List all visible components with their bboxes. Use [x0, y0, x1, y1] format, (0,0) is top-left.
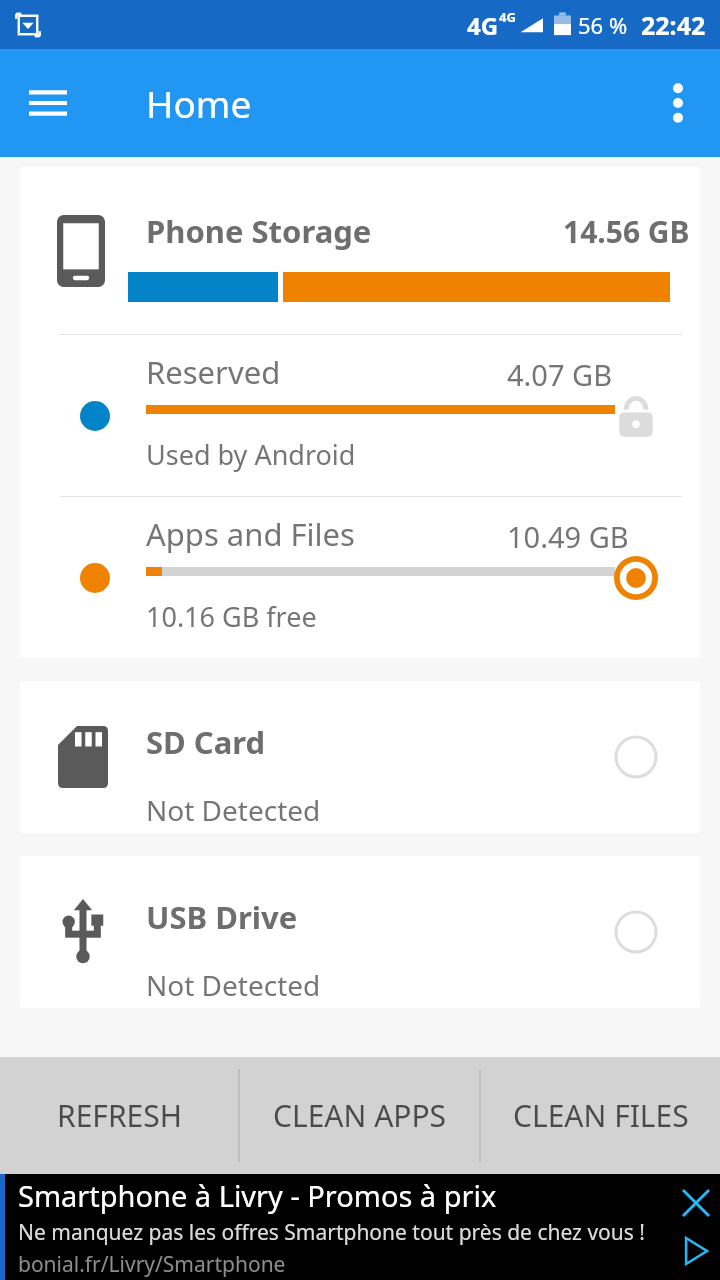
button[interactable]: Close ad [676, 1183, 716, 1223]
button[interactable]: Selected storage [610, 552, 662, 604]
staticText: Not Detected [146, 791, 321, 829]
button[interactable]: CLEAN APPS [240, 1057, 479, 1174]
button[interactable]: Select SD Card [610, 731, 662, 783]
staticText: 14.56 GB [563, 211, 690, 252]
staticText: Reserved [146, 351, 281, 393]
staticText: 56 % [578, 10, 628, 40]
button[interactable]: Select USB Drive [610, 906, 662, 958]
staticText: 10.16 GB free [146, 598, 317, 635]
staticText: Apps and Files [146, 513, 355, 555]
staticText: CLEAN FILES [513, 1095, 689, 1136]
staticText: Used by Android [146, 436, 356, 473]
button[interactable]: REFRESH [0, 1057, 238, 1174]
button[interactable]: CLEAN FILES [481, 1057, 720, 1174]
staticText: Phone Storage [146, 210, 372, 252]
staticText: Ne manquez pas les offres Smartphone tou… [18, 1218, 645, 1247]
staticText: Home [146, 78, 252, 128]
button[interactable]: Open navigation menu [20, 75, 76, 131]
staticText: 4.07 GB [507, 355, 613, 394]
button[interactable]: USB Drive [20, 856, 700, 1008]
staticText: REFRESH [57, 1095, 182, 1136]
staticText: Not Detected [146, 966, 321, 1004]
staticText: USB Drive [146, 896, 298, 938]
button[interactable]: SD Card [20, 681, 700, 833]
button[interactable]: More options [650, 75, 706, 131]
button[interactable]: Reserved [20, 335, 700, 496]
button[interactable]: Phone Storage [20, 167, 700, 334]
staticText: bonial.fr/Livry/Smartphone [18, 1250, 286, 1279]
staticText: 22:42 [641, 8, 706, 42]
staticText: 10.49 GB [507, 517, 629, 556]
staticText: 4G [499, 8, 516, 26]
staticText: Smartphone à Livry - Promos à prix imbat… [18, 1176, 662, 1215]
staticText: SD Card [146, 721, 266, 763]
button[interactable]: Locked storage [610, 390, 662, 442]
staticText: 4G [467, 9, 499, 42]
button[interactable]: Apps and Files [20, 497, 700, 658]
staticText: CLEAN APPS [273, 1095, 447, 1136]
button[interactable]: Ad info [676, 1231, 716, 1271]
